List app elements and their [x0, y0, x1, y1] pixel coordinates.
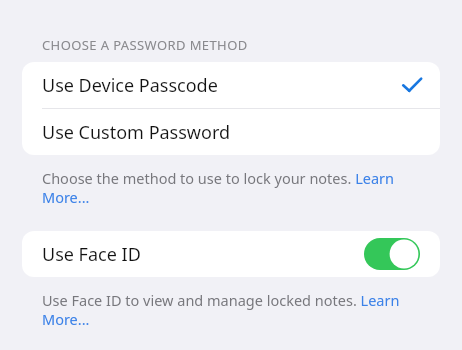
staticText: CHOOSE A PASSWORD METHOD: [42, 36, 248, 54]
button[interactable]: Use Face ID: [22, 231, 440, 277]
staticText: Use Device Passcode: [42, 73, 218, 98]
button[interactable]: Use Custom Password: [22, 109, 440, 155]
button[interactable]: Use Face ID to view and manage locked no…: [42, 290, 440, 329]
button[interactable]: Use Device Passcode: [22, 62, 440, 108]
button[interactable]: Use Face ID toggle, on: [364, 238, 420, 270]
staticText: Choose the method to use to lock your no…: [42, 168, 440, 207]
staticText: Use Face ID to view and manage locked no…: [42, 290, 440, 329]
staticText: Use Custom Password: [42, 120, 231, 145]
button[interactable]: Choose the method to use to lock your no…: [42, 168, 440, 207]
staticText: Use Face ID: [42, 242, 141, 267]
